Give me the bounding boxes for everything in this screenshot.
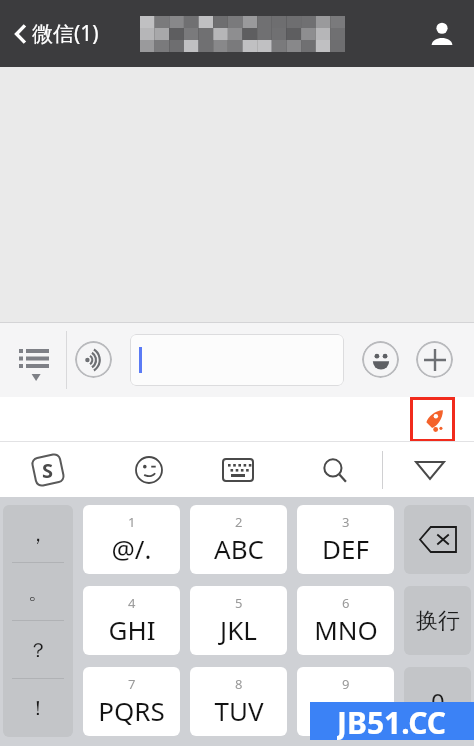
button[interactable]: Voice input (75, 341, 112, 378)
staticText: 6 (342, 594, 350, 612)
staticText: 3 (342, 513, 350, 531)
staticText: 7 (128, 675, 136, 693)
staticText: 微信(1) (32, 19, 99, 48)
button[interactable]: 8 (190, 667, 287, 736)
staticText: JB51.CC (337, 702, 447, 740)
staticText: ABC (214, 531, 264, 566)
staticText: PQRS (98, 693, 165, 728)
button[interactable]: Backspace (404, 505, 471, 574)
staticText: @/. (111, 531, 152, 566)
button[interactable]: Search (311, 446, 359, 494)
button[interactable]: Keyboard (214, 446, 262, 494)
button[interactable]: Chat list (6, 332, 62, 388)
button[interactable]: 2 (190, 505, 287, 574)
button[interactable]: 6 (297, 586, 394, 655)
button[interactable]: Hide keyboard (406, 446, 454, 494)
button[interactable]: 换行 (404, 586, 471, 655)
staticText: ！ (28, 696, 48, 721)
button[interactable]: 3 (297, 505, 394, 574)
staticText: WXYZ (311, 693, 381, 728)
staticText: JKL (220, 612, 257, 647)
staticText: 2 (235, 513, 243, 531)
button[interactable]: 5 (190, 586, 287, 655)
staticText: 。 (28, 580, 48, 605)
button[interactable]: Contact profile (424, 16, 460, 52)
staticText: 4 (128, 594, 136, 612)
staticText: 5 (235, 594, 243, 612)
staticText: 换行 (416, 607, 460, 635)
staticText: ？ (28, 638, 48, 663)
button[interactable]: 0 (404, 667, 471, 736)
staticText: S (42, 457, 54, 484)
staticText: 9 (342, 675, 350, 693)
staticText: GHI (108, 612, 156, 647)
button[interactable]: 9 (297, 667, 394, 736)
button[interactable]: Rocket shortcut (410, 397, 455, 442)
staticText: MNO (314, 612, 378, 647)
staticText: DEF (322, 531, 369, 566)
button[interactable]: Emoji (362, 341, 399, 378)
button[interactable]: 7 (83, 667, 180, 736)
staticText: ， (28, 522, 48, 547)
button[interactable]: 1 (83, 505, 180, 574)
button[interactable]: Sogou input (24, 446, 72, 494)
button[interactable]: 微信(1) (10, 13, 103, 54)
staticText: 1 (128, 513, 136, 531)
button[interactable]: 4 (83, 586, 180, 655)
button[interactable] (130, 334, 344, 386)
button[interactable]: ， (3, 505, 73, 737)
staticText: 0 (431, 685, 445, 718)
button[interactable]: Emoji panel (125, 446, 173, 494)
button[interactable]: More (416, 341, 453, 378)
staticText: 8 (235, 675, 243, 693)
staticText: TUV (214, 693, 264, 728)
